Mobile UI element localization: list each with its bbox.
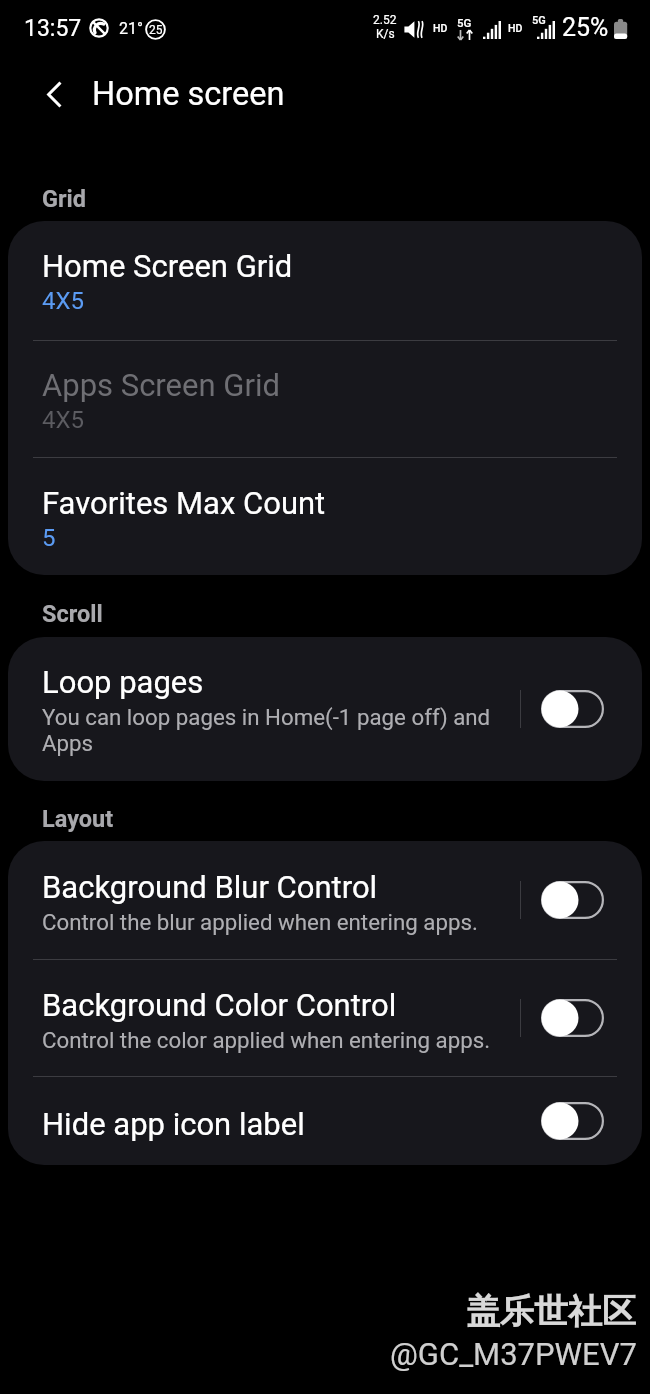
staticText: Background Blur Control [42, 869, 378, 905]
button[interactable]: Toggle setting [541, 690, 604, 728]
button[interactable]: Hide app icon label [8, 1077, 642, 1165]
staticText: You can loop pages in Home(-1 page off) … [42, 704, 497, 756]
staticText: Apps Screen Grid [42, 367, 280, 403]
staticText: 盖乐世社区 [466, 1290, 636, 1333]
staticText: Hide app icon label [42, 1106, 305, 1142]
button[interactable]: Background Color Control [8, 960, 642, 1076]
button[interactable]: Apps Screen Grid [8, 341, 642, 457]
staticText: 5G [457, 16, 472, 29]
staticText: 13:57 [24, 15, 82, 42]
staticText: Home Screen Grid [42, 248, 293, 284]
staticText: Scroll [42, 600, 103, 628]
staticText: @GC_M37PWEV7 [390, 1336, 637, 1372]
staticText: 4X5 [42, 287, 85, 315]
button[interactable]: Background Blur Control [8, 841, 642, 959]
staticText: Control the blur applied when entering a… [42, 909, 478, 935]
staticText: 5G [532, 14, 546, 27]
staticText: Layout [42, 805, 114, 833]
staticText: Loop pages [42, 664, 204, 700]
staticText: HD [508, 22, 523, 34]
staticText: K/s [376, 27, 395, 41]
button[interactable]: Home Screen Grid [8, 221, 642, 340]
button[interactable]: Back [24, 64, 84, 124]
staticText: Grid [42, 185, 87, 213]
staticText: 5 [42, 524, 56, 552]
staticText: 25 [149, 23, 163, 37]
staticText: Background Color Control [42, 987, 397, 1023]
button[interactable]: Toggle setting [541, 999, 604, 1037]
button[interactable]: Toggle setting [541, 1102, 604, 1140]
staticText: HD [433, 22, 448, 34]
staticText: 2.52 [373, 13, 397, 27]
staticText: 25% [562, 13, 609, 42]
button[interactable]: Favorites Max Count [8, 458, 642, 575]
staticText: 4X5 [42, 406, 85, 434]
staticText: Favorites Max Count [42, 485, 326, 521]
staticText: 21° [119, 19, 143, 38]
staticText: Home screen [92, 75, 285, 113]
staticText: Control the color applied when entering … [42, 1027, 491, 1053]
button[interactable]: Toggle setting [541, 881, 604, 919]
button[interactable]: Loop pages [8, 637, 642, 781]
